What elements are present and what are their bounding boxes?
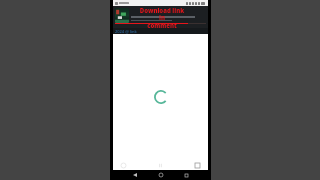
button[interactable]: 2024 @ link (113, 28, 208, 34)
button[interactable]: Recent apps (182, 171, 190, 179)
staticText: Download link in (139, 7, 185, 22)
button[interactable]: Fullscreen (195, 163, 200, 168)
staticText: 2024 @ link (115, 29, 137, 34)
button[interactable]: Home (157, 171, 165, 179)
button[interactable]: Pause (158, 163, 163, 168)
button[interactable]: Back (131, 171, 139, 179)
button[interactable]: Previous (121, 163, 126, 168)
button[interactable]: Download link in (113, 6, 208, 28)
staticText: comment section (139, 22, 185, 29)
